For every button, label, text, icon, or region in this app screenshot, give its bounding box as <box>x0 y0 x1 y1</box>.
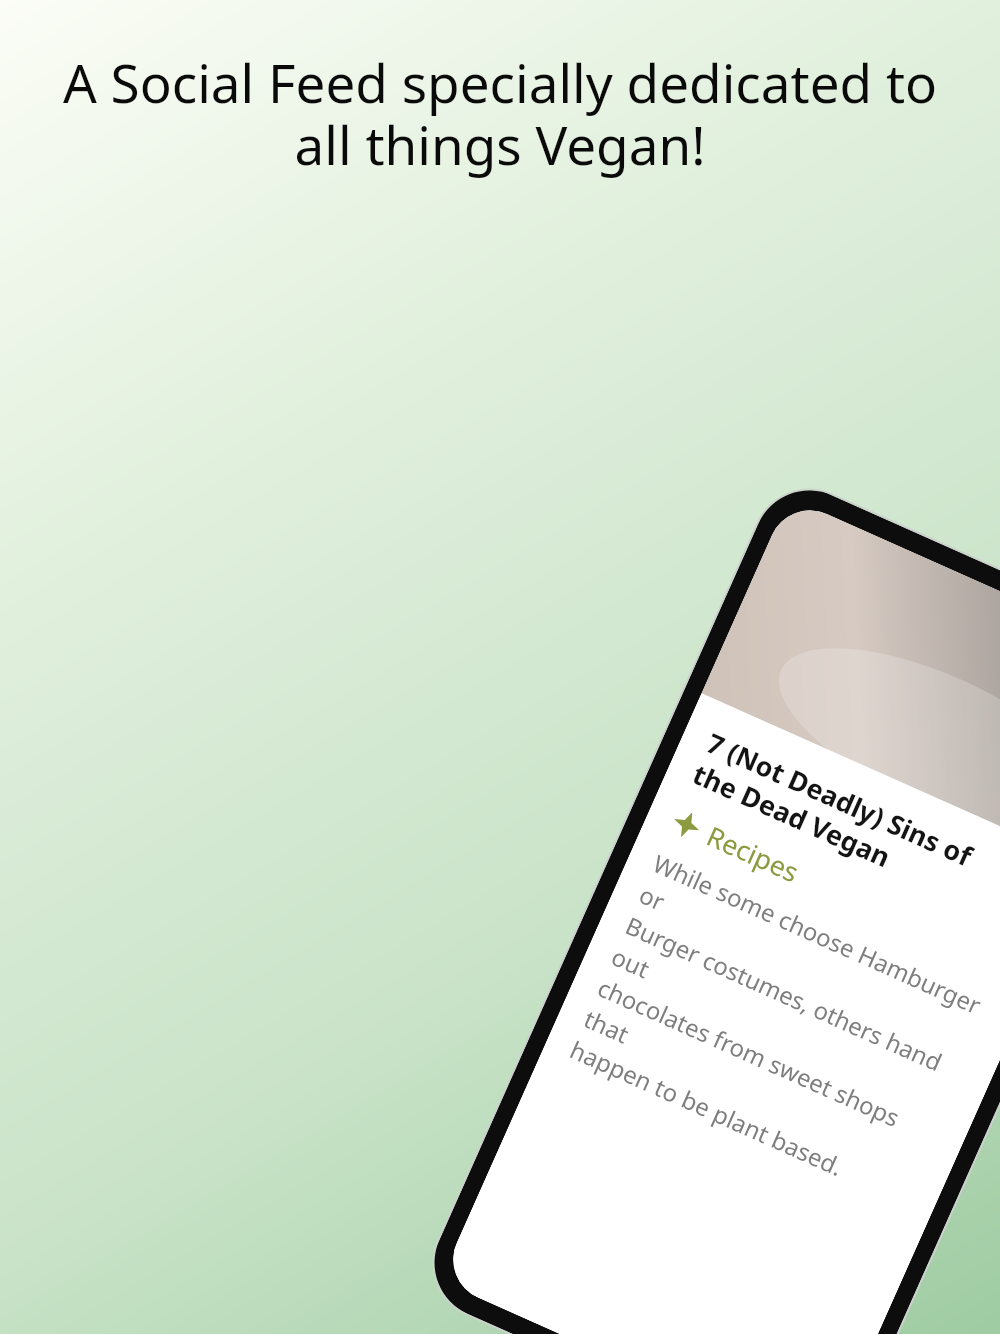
staticText: 7 (Not Deadly) Sins of the Dead Vegan <box>687 724 978 906</box>
staticText: A Social Feed specially dedicated to all… <box>60 46 940 180</box>
staticText: While some choose Hamburger or Burger co… <box>565 846 1000 1216</box>
button[interactable]: Recipes category <box>666 802 805 890</box>
button[interactable]: 7 (Not Deadly) Sins of the Dead Vegan <box>440 693 1000 1334</box>
staticText: Recipes <box>701 817 805 890</box>
other: Recipes category <box>668 806 705 843</box>
button[interactable]: 7 (Not Deadly) Sins of the Dead Vegan <box>440 497 1000 1334</box>
